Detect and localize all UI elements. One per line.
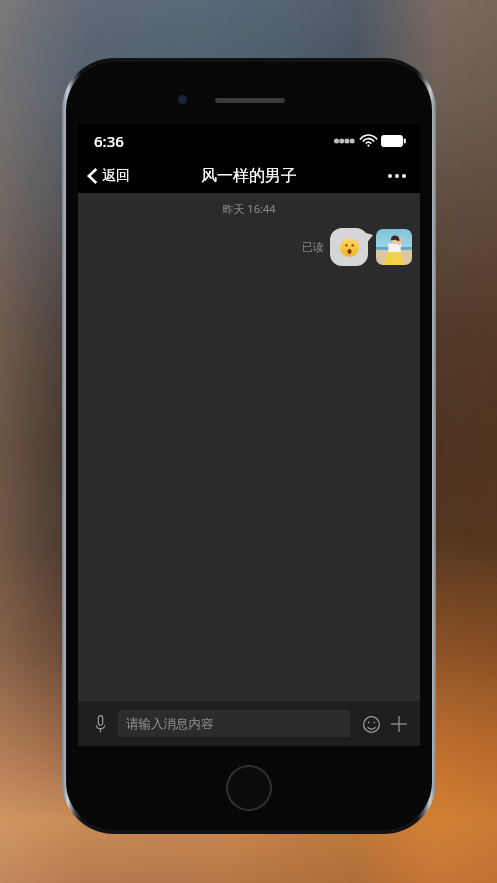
button[interactable]: Emoji [358, 711, 384, 737]
button[interactable]: 返回 [78, 163, 140, 189]
button[interactable]: Voice input [86, 710, 114, 738]
staticText: 返回 [102, 167, 130, 185]
button[interactable]: 请输入消息内容 [118, 710, 350, 737]
button[interactable]: Add attachment [386, 711, 412, 737]
button[interactable]: More options [374, 166, 420, 186]
button[interactable] [330, 228, 368, 266]
staticText: 6:36 [94, 131, 124, 151]
staticText: 风一样的男子 [201, 166, 297, 186]
staticText: 昨天 16:44 [78, 201, 420, 216]
staticText: 已读 [302, 240, 324, 254]
staticText: 请输入消息内容 [126, 716, 214, 732]
button[interactable]: Avatar [376, 229, 412, 265]
